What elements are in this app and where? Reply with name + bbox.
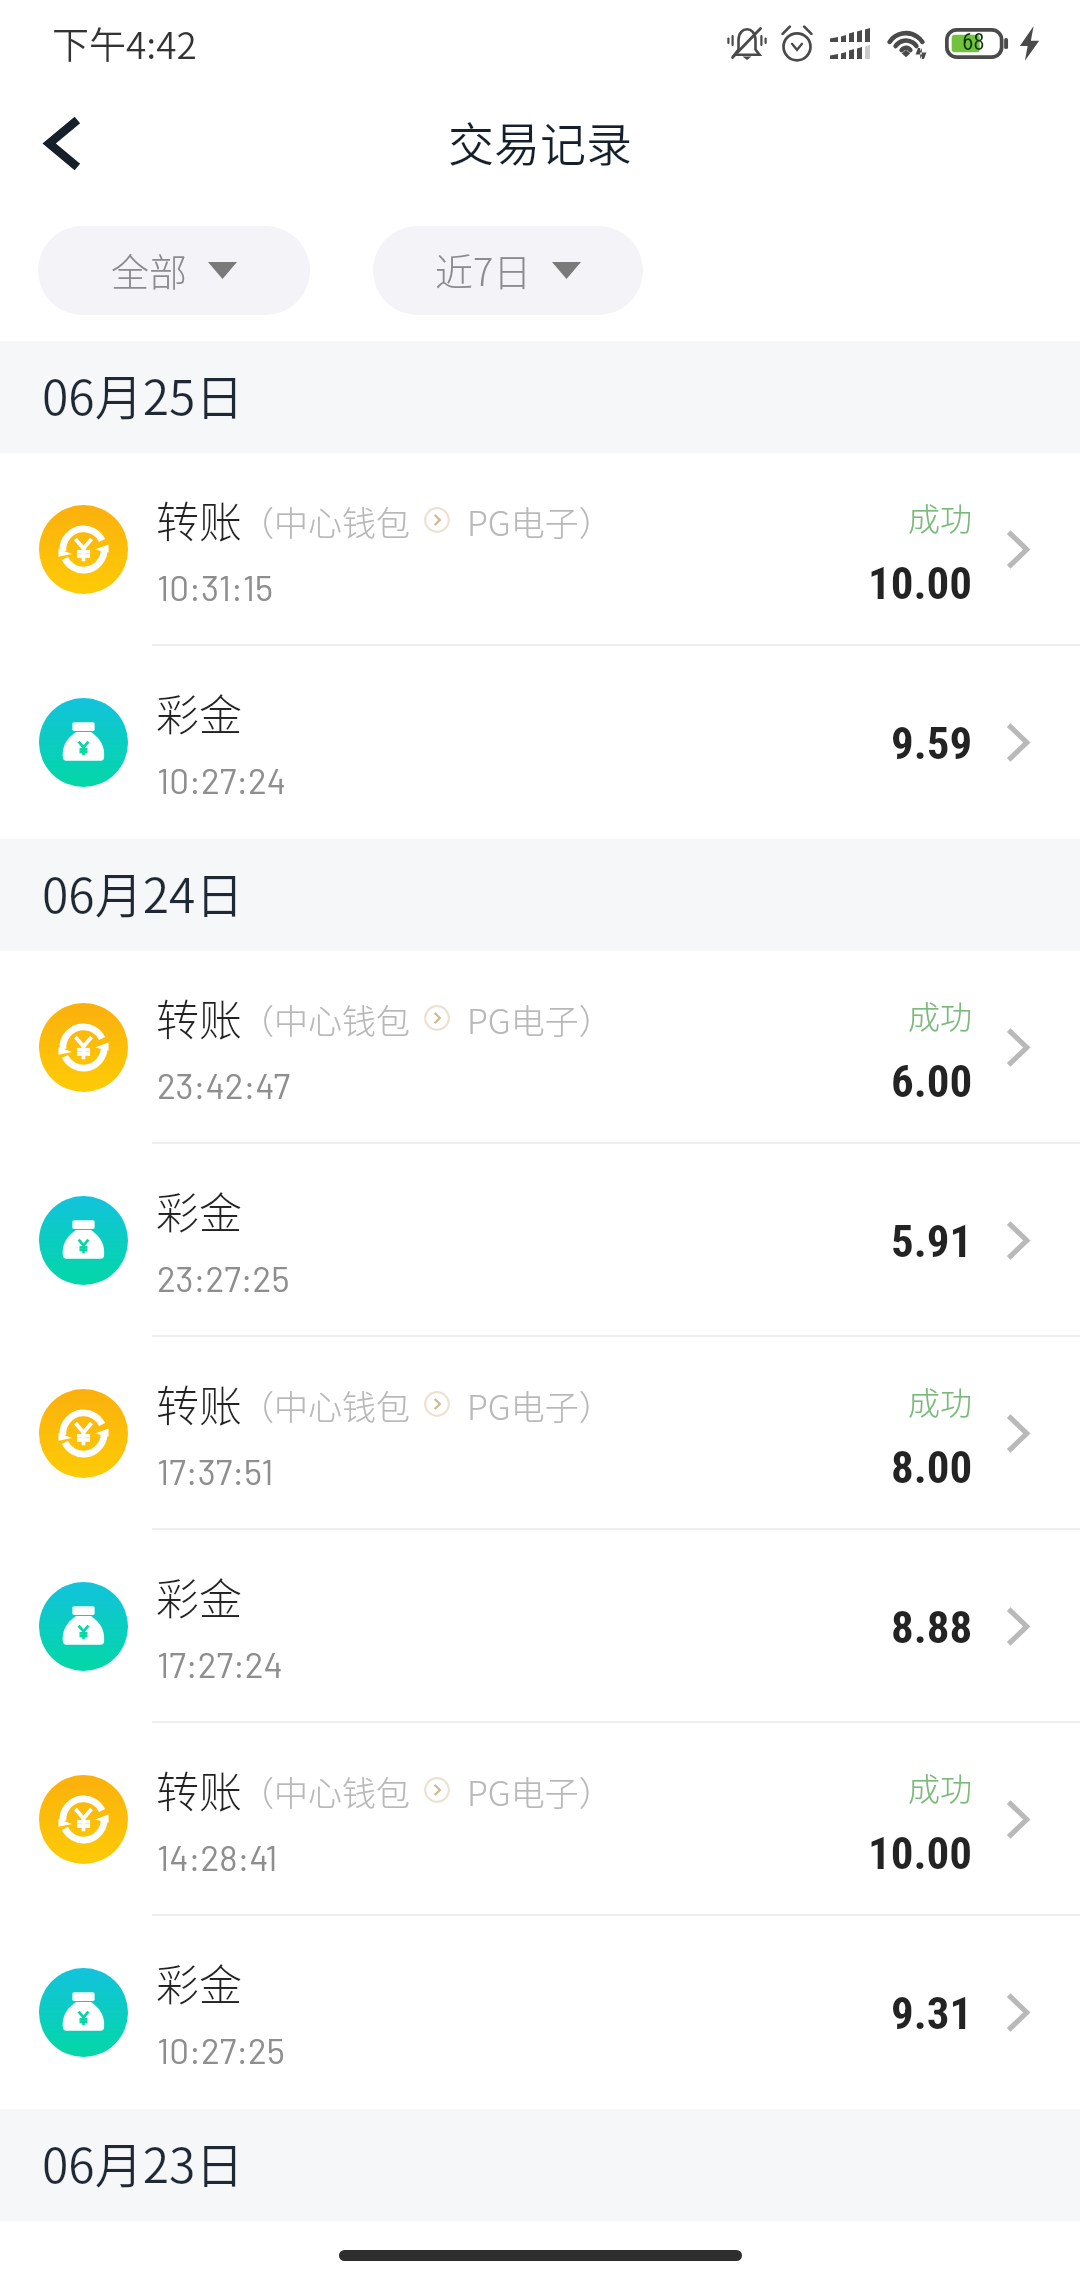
staticText: 彩金: [156, 1179, 242, 1241]
staticText: （中心钱包: [240, 1381, 410, 1430]
button[interactable]: 转账: [0, 453, 1080, 646]
staticText: 彩金: [156, 681, 242, 743]
staticText: 9.59: [891, 717, 973, 770]
button[interactable]: 彩金: [0, 646, 1080, 839]
staticText: 下午4:42: [52, 16, 197, 70]
button[interactable]: 彩金: [0, 1530, 1080, 1723]
staticText: 转账: [156, 986, 242, 1048]
staticText: 10.00: [868, 1827, 973, 1880]
staticText: （中心钱包: [240, 497, 410, 546]
staticText: 5.91: [891, 1215, 973, 1268]
staticText: 06月24日: [42, 857, 244, 927]
staticText: 成功: [908, 992, 973, 1038]
staticText: 转账: [156, 1372, 242, 1434]
staticText: 8.00: [891, 1441, 973, 1494]
staticText: 06月25日: [42, 359, 244, 429]
staticText: 6.00: [891, 1055, 973, 1108]
staticText: 成功: [908, 1378, 973, 1424]
staticText: 9.31: [891, 1987, 973, 2040]
button[interactable]: 转账: [0, 1337, 1080, 1530]
staticText: 成功: [908, 1764, 973, 1810]
staticText: 06月23日: [42, 2127, 244, 2197]
staticText: PG电子）: [467, 497, 613, 546]
staticText: 23:27:25: [157, 1257, 290, 1299]
staticText: 全部: [111, 242, 188, 297]
staticText: 彩金: [156, 1565, 242, 1627]
staticText: 14:28:41: [157, 1836, 278, 1878]
staticText: 转账: [156, 1758, 242, 1820]
staticText: 17:27:24: [157, 1643, 283, 1685]
button[interactable]: 转账: [0, 951, 1080, 1144]
staticText: 交易记录: [448, 108, 632, 175]
button[interactable]: 全部: [38, 226, 310, 315]
staticText: 17:37:51: [157, 1450, 274, 1492]
staticText: PG电子）: [467, 995, 613, 1044]
staticText: 8.88: [891, 1601, 973, 1654]
staticText: 23:42:47: [157, 1064, 291, 1106]
staticText: 成功: [908, 494, 973, 540]
staticText: 转账: [156, 488, 242, 550]
staticText: 68: [962, 29, 985, 56]
button[interactable]: 彩金: [0, 1144, 1080, 1337]
staticText: 近7日: [435, 242, 532, 297]
staticText: 10.00: [868, 557, 973, 610]
button[interactable]: 转账: [0, 1723, 1080, 1916]
staticText: PG电子）: [467, 1381, 613, 1430]
staticText: 彩金: [156, 1951, 242, 2013]
staticText: （中心钱包: [240, 995, 410, 1044]
staticText: 10:27:24: [157, 759, 287, 801]
staticText: 10:31:15: [157, 566, 274, 608]
button[interactable]: Back: [12, 105, 112, 205]
staticText: 10:27:25: [157, 2029, 285, 2071]
button[interactable]: 近7日: [373, 226, 643, 315]
staticText: （中心钱包: [240, 1767, 410, 1816]
staticText: PG电子）: [467, 1767, 613, 1816]
button[interactable]: 彩金: [0, 1916, 1080, 2109]
